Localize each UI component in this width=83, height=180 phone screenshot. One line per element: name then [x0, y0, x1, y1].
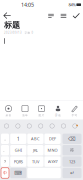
staticText: ， [3, 136, 7, 141]
button[interactable]: GHI [10, 145, 26, 155]
staticText: GHI [15, 147, 22, 153]
staticText: MNO [47, 147, 57, 153]
staticText: TUV [32, 159, 39, 164]
staticText: ↵ [70, 170, 74, 176]
button[interactable]: Input option [37, 122, 45, 129]
button[interactable]: 手写 [67, 104, 81, 117]
staticText: PQRS [14, 159, 23, 164]
button[interactable]: Input option [71, 122, 79, 129]
button[interactable]: Input option [48, 122, 56, 129]
button[interactable]: PQRS [10, 156, 26, 167]
staticText: WXYZ [47, 159, 57, 164]
staticText: @ 他 [55, 113, 61, 117]
staticText: DEF [49, 136, 56, 141]
button[interactable]: TUV [27, 156, 43, 167]
staticText: 中 [3, 170, 7, 175]
button[interactable]: ⌨ [10, 168, 26, 178]
staticText: JKL [33, 147, 38, 153]
staticText: 1 [17, 135, 20, 142]
button[interactable]: ？ [1, 156, 9, 167]
staticText: ⌨ [14, 170, 22, 176]
button[interactable]: 、 [1, 145, 9, 155]
button[interactable]: Input option [14, 122, 22, 129]
staticText: ABC [31, 136, 40, 141]
staticText: 、 [3, 148, 7, 153]
staticText: 图片 [38, 114, 44, 117]
button[interactable]: Input option [25, 122, 33, 129]
button[interactable]: JKL [27, 145, 43, 155]
button[interactable]: Paragraph style [46, 11, 56, 20]
button[interactable]: ， [1, 134, 9, 144]
button[interactable]: @ 他 [51, 104, 65, 117]
button[interactable]: More [58, 11, 68, 20]
button[interactable]: DEF [44, 134, 61, 144]
button[interactable]: ⌫ [62, 134, 81, 144]
button[interactable]: 录音 [1, 104, 15, 117]
staticText: 2023/09/13 [4, 31, 22, 34]
button[interactable]: WXYZ [44, 156, 61, 167]
button[interactable]: Back [2, 11, 13, 20]
button[interactable]: Input option [2, 122, 10, 129]
staticText: 123 [69, 159, 75, 164]
button[interactable]: 1 [10, 134, 26, 144]
button[interactable]: 图片 [34, 104, 48, 117]
staticText: 字数 0 [25, 31, 34, 34]
staticText: 84% [68, 2, 75, 7]
button[interactable]: 符 [62, 145, 81, 155]
staticText: 标题 [4, 20, 20, 30]
staticText: 14:05 [21, 1, 34, 8]
staticText: ？ [3, 159, 7, 164]
staticText: ⌫ [68, 136, 76, 142]
staticText: 手写 [71, 114, 77, 117]
button[interactable]: Input option [59, 122, 67, 129]
staticText: 清单 [22, 114, 28, 117]
button[interactable]: 中 [1, 168, 9, 178]
button[interactable]: ABC [27, 134, 43, 144]
button[interactable]: Done [71, 11, 81, 20]
staticText: 符 [70, 148, 74, 153]
button[interactable]: ↵ [62, 168, 81, 178]
staticText: 录音 [5, 114, 11, 117]
button[interactable]: MNO [44, 145, 61, 155]
button[interactable]: 清单 [18, 104, 32, 117]
button[interactable]: 123 [62, 156, 81, 167]
